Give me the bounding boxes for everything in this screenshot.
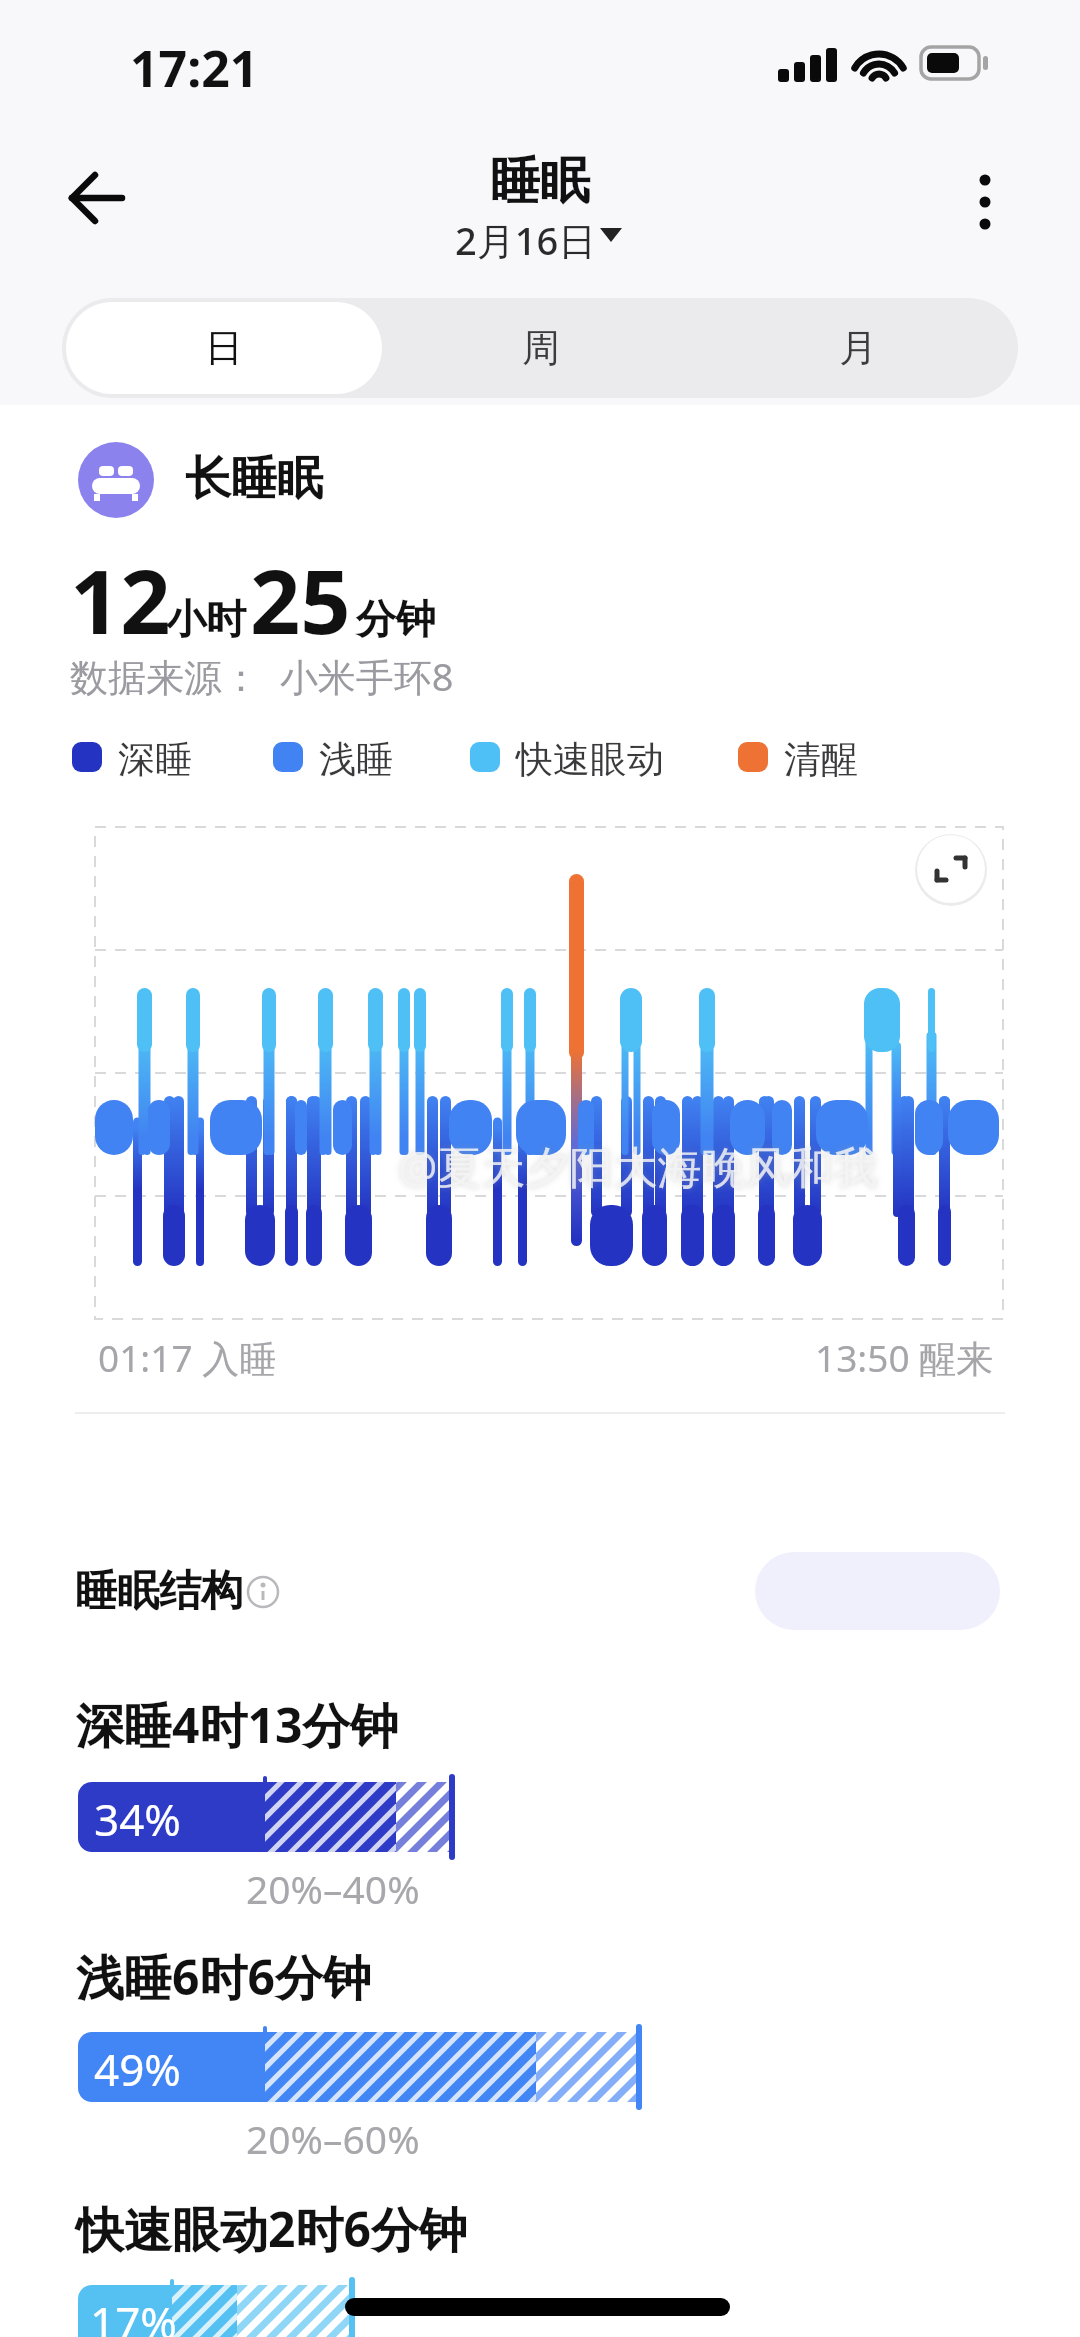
staticText: 月	[839, 324, 877, 372]
button[interactable]	[755, 1552, 1000, 1630]
staticText: 12	[70, 540, 171, 660]
staticText: 2月16日	[455, 214, 597, 266]
staticText: 01:17 入睡	[98, 1332, 277, 1383]
button[interactable]: 2月16日	[0, 214, 1066, 266]
staticText: 睡眠	[490, 150, 590, 213]
staticText: 20%–60%	[246, 2112, 420, 2165]
staticText: 数据来源： 小米手环8	[70, 650, 454, 702]
staticText: 快速眼动	[516, 736, 664, 783]
staticText: 49%	[94, 2039, 181, 2099]
staticText: 清醒	[784, 736, 858, 783]
button[interactable]	[700, 302, 1016, 394]
staticText: 深睡	[118, 736, 192, 783]
staticText: 分钟	[356, 594, 436, 644]
staticText: 周	[522, 324, 560, 372]
staticText: 13:50 醒来	[815, 1332, 994, 1383]
staticText: @夏天夕阳大海晚风和我	[398, 1136, 878, 1196]
staticText: 睡眠结构	[75, 1565, 243, 1618]
staticText: 34%	[94, 1789, 181, 1849]
button[interactable]	[66, 302, 382, 394]
staticText: 深睡4时13分钟	[76, 1692, 399, 1758]
staticText: 25	[250, 540, 351, 660]
staticText: 20%–40%	[246, 1862, 420, 1915]
staticText: 17:21	[130, 34, 259, 102]
button[interactable]	[382, 302, 700, 394]
staticText: 日	[205, 324, 243, 372]
staticText: 快速眼动2时6分钟	[76, 2196, 467, 2262]
staticText: 17%	[90, 2292, 177, 2337]
staticText: 浅睡	[319, 736, 393, 783]
staticText: 浅睡6时6分钟	[76, 1944, 371, 2010]
staticText: 小时	[166, 594, 246, 644]
staticText: 长睡眠	[185, 450, 323, 508]
